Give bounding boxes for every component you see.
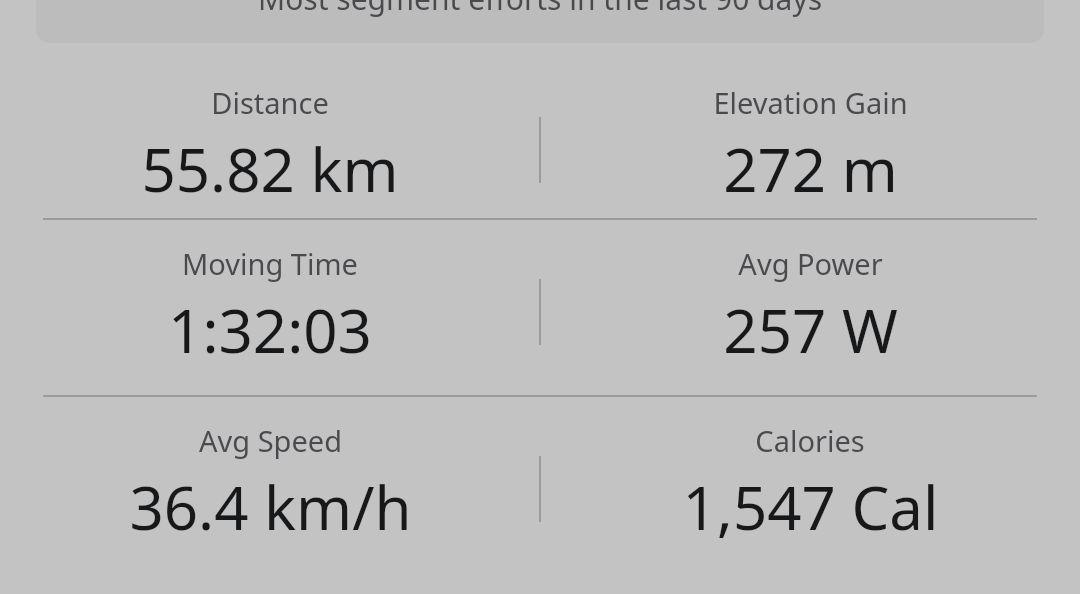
button[interactable]: Calories (548, 421, 1072, 548)
staticText: Elevation Gain (713, 83, 908, 122)
staticText: 55.82 km (141, 128, 399, 210)
staticText: 1:32:03 (168, 289, 372, 371)
staticText: Avg Speed (199, 421, 342, 460)
staticText: 272 m (723, 128, 898, 210)
button[interactable]: Distance (8, 83, 532, 210)
staticText: 257 W (723, 289, 898, 371)
staticText: 1,547 Cal (682, 466, 939, 548)
button[interactable]: Avg Speed (8, 421, 532, 548)
staticText: Avg Power (738, 244, 883, 283)
staticText: Most segment efforts in the last 90 days (36, 0, 1044, 19)
button[interactable]: Moving Time (8, 244, 532, 371)
staticText: Distance (211, 83, 329, 122)
button[interactable]: Most segment efforts in the last 90 days (36, 0, 1044, 43)
staticText: Moving Time (182, 244, 358, 283)
button[interactable]: Elevation Gain (548, 83, 1072, 210)
staticText: 36.4 km/h (129, 466, 412, 548)
button[interactable]: Avg Power (548, 244, 1072, 371)
staticText: Calories (755, 421, 865, 460)
